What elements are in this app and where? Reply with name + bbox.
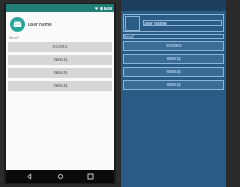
button[interactable]: YANLIŞ <box>8 55 112 65</box>
staticText: DOĞRU <box>166 43 182 49</box>
staticText: Soru? <box>9 35 19 40</box>
button[interactable]: user name <box>123 14 224 32</box>
staticText: user name <box>143 20 167 26</box>
staticText: DOĞRU <box>52 44 68 50</box>
staticText: 8:00 <box>104 6 112 11</box>
staticText: Soru? <box>124 34 134 39</box>
staticText: YANLIŞ <box>53 83 68 89</box>
staticText: YANLIŞ <box>53 57 68 63</box>
button[interactable]: YANLIŞ <box>123 67 224 77</box>
button[interactable]: DOĞRU <box>8 42 112 52</box>
staticText: YANLIŞ <box>53 70 68 76</box>
button[interactable]: Recents <box>84 170 97 183</box>
button[interactable]: YANLIŞ <box>8 81 112 91</box>
button[interactable]: YANLIŞ <box>123 80 224 90</box>
button[interactable]: Back <box>23 170 36 183</box>
staticText: YANLIŞ <box>166 56 181 62</box>
button[interactable]: Home <box>54 170 67 183</box>
button[interactable]: YANLIŞ <box>8 68 112 78</box>
staticText: YANLIŞ <box>166 82 181 88</box>
button[interactable]: user name <box>8 15 112 33</box>
button[interactable]: DOĞRU <box>123 41 224 51</box>
staticText: user name <box>28 21 52 27</box>
staticText: YANLIŞ <box>166 69 181 75</box>
button[interactable]: YANLIŞ <box>123 54 224 64</box>
